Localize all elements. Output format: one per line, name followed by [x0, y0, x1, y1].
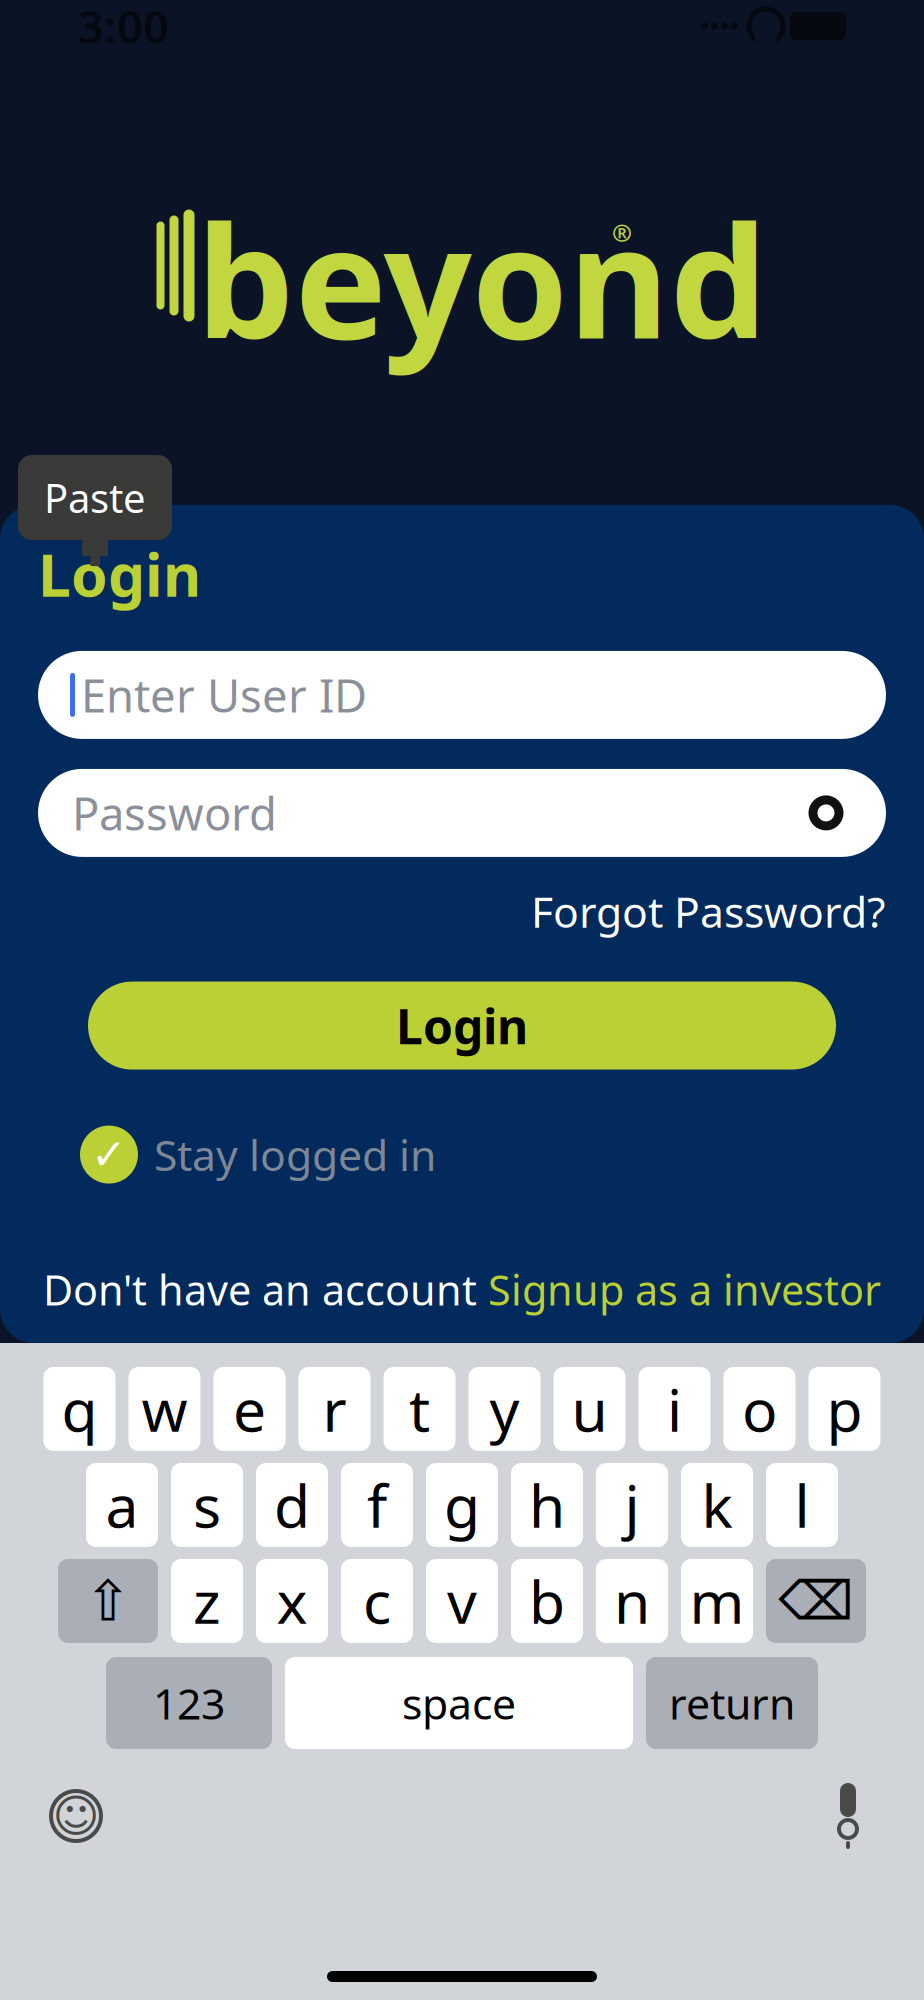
staticText: ✓: [91, 1130, 127, 1179]
staticText: l: [794, 1466, 809, 1544]
staticText: s: [193, 1466, 221, 1544]
staticText: return: [669, 1675, 795, 1731]
staticText: Stay logged in: [154, 1126, 436, 1183]
staticText: t: [409, 1370, 430, 1448]
button[interactable]: return: [646, 1657, 818, 1749]
staticText: Password: [72, 783, 277, 843]
button[interactable]: k: [681, 1463, 753, 1547]
staticText: f: [367, 1466, 387, 1544]
button[interactable]: Shift: [58, 1559, 158, 1643]
button[interactable]: Signup as a investor: [488, 1262, 881, 1317]
button[interactable]: Emoji: [46, 1786, 106, 1846]
staticText: g: [444, 1466, 480, 1544]
button[interactable]: q: [43, 1367, 115, 1451]
staticText: w: [141, 1370, 187, 1448]
staticText: p: [826, 1370, 862, 1448]
staticText: d: [274, 1466, 310, 1544]
button[interactable]: 123: [106, 1657, 272, 1749]
button[interactable]: v: [426, 1559, 498, 1643]
button[interactable]: g: [426, 1463, 498, 1547]
button[interactable]: z: [171, 1559, 243, 1643]
button[interactable]: f: [341, 1463, 413, 1547]
staticText: j: [624, 1466, 639, 1544]
staticText: c: [363, 1562, 391, 1640]
button[interactable]: j: [596, 1463, 668, 1547]
staticText: Forgot Password?: [531, 883, 886, 940]
staticText: ☺: [52, 1790, 99, 1842]
button[interactable]: d: [256, 1463, 328, 1547]
button[interactable]: o: [723, 1367, 795, 1451]
staticText: x: [276, 1562, 307, 1640]
staticText: q: [61, 1370, 97, 1448]
button[interactable]: Dictation: [818, 1783, 878, 1849]
staticText: b: [529, 1562, 565, 1640]
staticText: Enter User ID: [81, 665, 367, 725]
button[interactable]: a: [86, 1463, 158, 1547]
button[interactable]: s: [171, 1463, 243, 1547]
button[interactable]: Delete: [766, 1559, 866, 1643]
button[interactable]: Show password: [800, 793, 852, 833]
button[interactable]: r: [298, 1367, 370, 1451]
button[interactable]: u: [553, 1367, 625, 1451]
staticText: r: [322, 1370, 346, 1448]
button[interactable]: l: [766, 1463, 838, 1547]
button[interactable]: x: [256, 1559, 328, 1643]
staticText: Login: [38, 535, 201, 613]
staticText: m: [689, 1562, 744, 1640]
button[interactable]: space: [285, 1657, 633, 1749]
button[interactable]: y: [468, 1367, 540, 1451]
staticText: z: [193, 1562, 221, 1640]
staticText: space: [402, 1675, 516, 1731]
staticText: y: [489, 1370, 519, 1448]
staticText: v: [447, 1562, 477, 1640]
button[interactable]: ✓: [80, 1126, 436, 1184]
button[interactable]: m: [681, 1559, 753, 1643]
button[interactable]: i: [638, 1367, 710, 1451]
staticText: k: [701, 1466, 732, 1544]
staticText: beyond: [196, 176, 767, 381]
staticText: ®: [612, 217, 632, 248]
button[interactable]: p: [808, 1367, 880, 1451]
staticText: u: [571, 1370, 607, 1448]
staticText: 123: [153, 1675, 225, 1731]
button[interactable]: c: [341, 1559, 413, 1643]
staticText: a: [105, 1466, 138, 1544]
staticText: h: [529, 1466, 565, 1544]
button[interactable]: Login: [88, 982, 836, 1070]
staticText: Signup as a investor: [488, 1262, 881, 1317]
button[interactable]: w: [128, 1367, 200, 1451]
button[interactable]: h: [511, 1463, 583, 1547]
button[interactable]: n: [596, 1559, 668, 1643]
staticText: Paste: [44, 471, 146, 524]
staticText: n: [614, 1562, 650, 1640]
button[interactable]: Forgot Password?: [531, 883, 886, 940]
staticText: Login: [396, 994, 528, 1057]
button[interactable]: b: [511, 1559, 583, 1643]
staticText: ⇧: [84, 1569, 131, 1633]
staticText: Don't have an account: [43, 1262, 488, 1317]
staticText: ⌫: [778, 1571, 853, 1631]
staticText: o: [742, 1370, 777, 1448]
button[interactable]: t: [383, 1367, 455, 1451]
staticText: 3:00: [78, 0, 169, 56]
button[interactable]: e: [213, 1367, 285, 1451]
staticText: i: [667, 1370, 682, 1448]
staticText: e: [233, 1370, 266, 1448]
